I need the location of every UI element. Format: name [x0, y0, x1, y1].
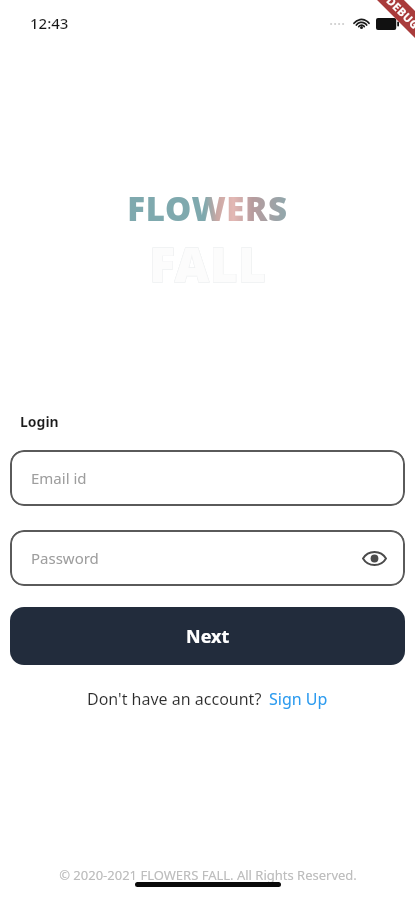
- staticText: Don't have an account?: [87, 688, 262, 710]
- staticText: © 2020-2021 FLOWERS FALL. All Rights Res…: [59, 866, 357, 884]
- staticText: Email id: [31, 468, 87, 488]
- button[interactable]: Sign Up: [269, 688, 328, 710]
- staticText: FALL: [149, 232, 267, 296]
- staticText: Login: [20, 412, 59, 431]
- staticText: DEBUG: [384, 0, 415, 33]
- staticText: Password: [31, 548, 99, 568]
- staticText: Sign Up: [269, 688, 328, 710]
- staticText: FALL: [149, 232, 267, 296]
- button[interactable]: Show password: [357, 541, 391, 575]
- staticText: Next: [186, 624, 230, 649]
- button[interactable]: Password: [10, 530, 405, 586]
- staticText: FLOWERS: [127, 186, 288, 231]
- button[interactable]: Email id: [10, 450, 405, 506]
- button[interactable]: Next: [10, 607, 405, 665]
- staticText: 12:43: [30, 13, 69, 33]
